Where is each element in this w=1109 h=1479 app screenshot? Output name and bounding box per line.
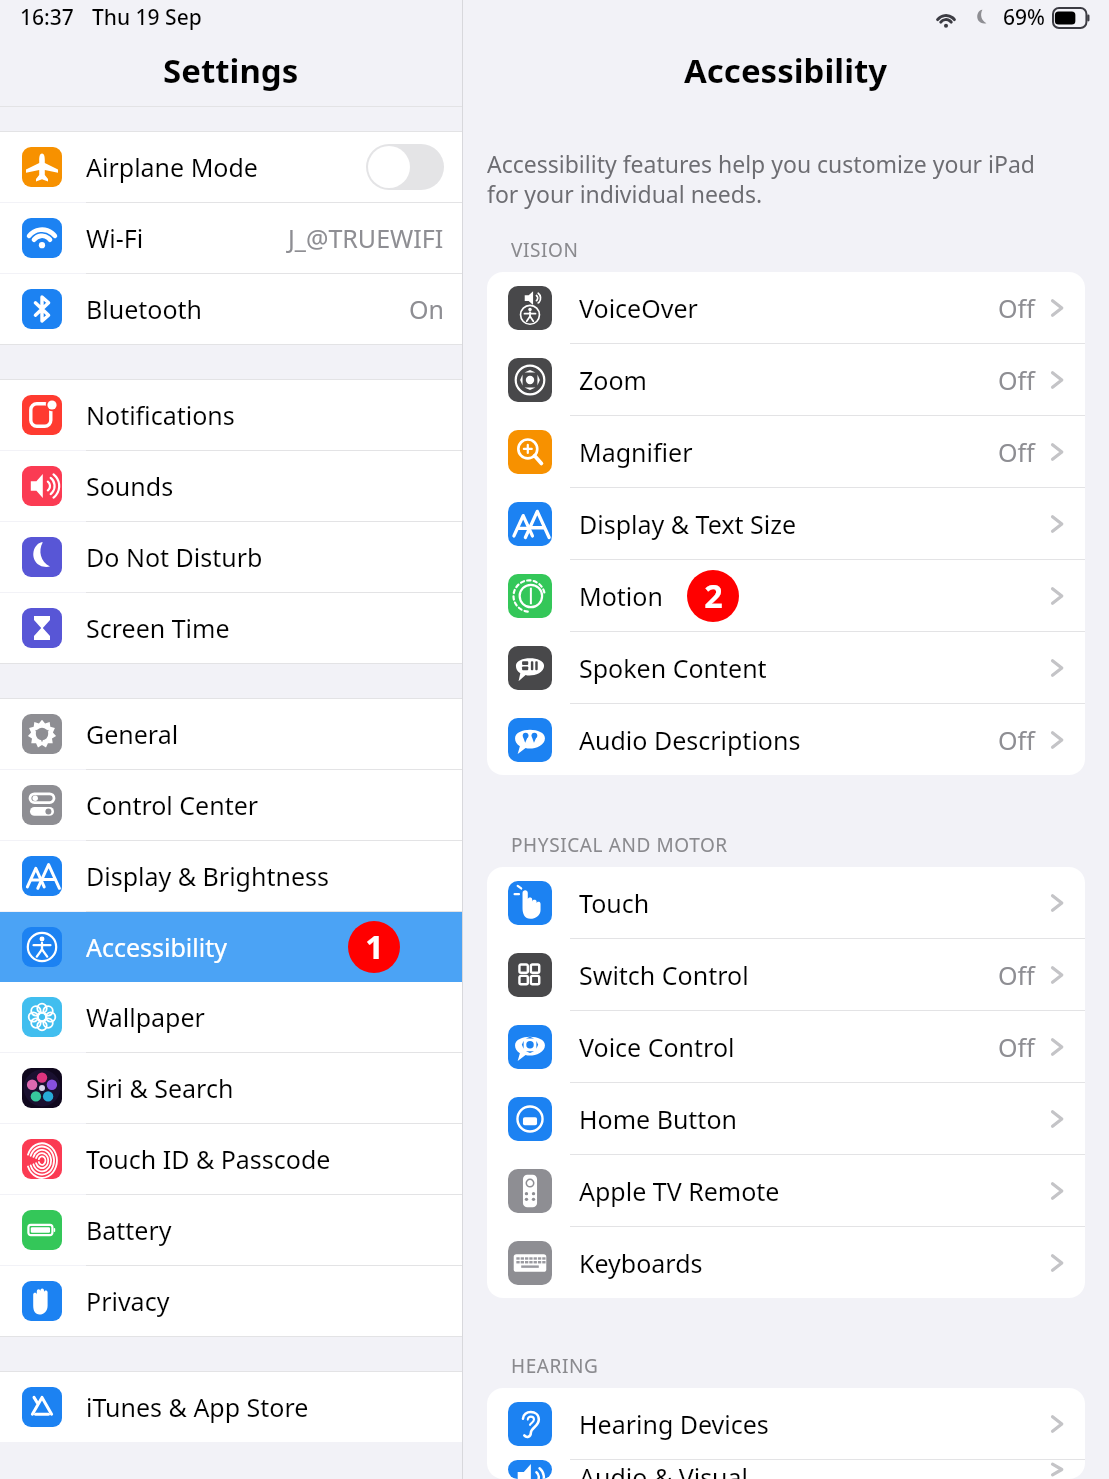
button[interactable]: Accessibility [0, 912, 462, 982]
staticText: Accessibility [86, 930, 227, 964]
staticText: Settings [163, 48, 299, 93]
staticText: Off [998, 291, 1035, 325]
staticText: Motion [579, 579, 663, 613]
staticText: 16:37 [20, 3, 74, 32]
button[interactable]: Home Button [487, 1083, 1085, 1154]
staticText: Bluetooth [86, 292, 203, 326]
staticText: Touch ID & Passcode [86, 1142, 331, 1176]
staticText: Sounds [86, 469, 174, 503]
staticText: Display & Text Size [579, 507, 797, 541]
staticText: Wi-Fi [86, 221, 144, 255]
button[interactable]: Switch Control [487, 939, 1085, 1010]
button[interactable]: Sounds [0, 451, 462, 521]
button[interactable]: General [0, 699, 462, 769]
button[interactable]: Touch [487, 867, 1085, 938]
button[interactable]: Motion [487, 560, 1085, 631]
button[interactable]: Display & Brightness [0, 841, 462, 911]
staticText: Audio Descriptions [579, 723, 801, 757]
staticText: Off [998, 958, 1035, 992]
staticText: Voice Control [579, 1030, 735, 1064]
button[interactable]: Wi-Fi [0, 203, 462, 273]
staticText: J_@TRUEWIFI [288, 221, 444, 255]
staticText: Home Button [579, 1102, 737, 1136]
button[interactable]: Do Not Disturb [0, 522, 462, 592]
button[interactable]: Apple TV Remote [487, 1155, 1085, 1226]
staticText: Off [998, 435, 1035, 469]
staticText: Spoken Content [579, 651, 767, 685]
staticText: Touch [579, 886, 650, 920]
button[interactable]: Display & Text Size [487, 488, 1085, 559]
button[interactable]: Touch ID & Passcode [0, 1124, 462, 1194]
staticText: Hearing Devices [579, 1407, 769, 1441]
staticText: Accessibility [684, 48, 888, 93]
staticText: Wallpaper [86, 1000, 205, 1034]
button[interactable]: Magnifier [487, 416, 1085, 487]
staticText: Siri & Search [86, 1071, 234, 1105]
staticText: General [86, 717, 179, 751]
staticText: Control Center [86, 788, 259, 822]
staticText: Off [998, 1030, 1035, 1064]
staticText: On [409, 292, 444, 326]
staticText: Battery [86, 1213, 172, 1247]
button[interactable]: Notifications [0, 380, 462, 450]
staticText: 1 [365, 925, 384, 969]
button[interactable]: Audio & Visual [487, 1460, 1085, 1479]
button[interactable]: VoiceOver [487, 272, 1085, 343]
button[interactable]: Control Center [0, 770, 462, 840]
button[interactable]: Battery [0, 1195, 462, 1265]
button[interactable]: Bluetooth [0, 274, 462, 344]
button[interactable]: Screen Time [0, 593, 462, 663]
button[interactable]: Siri & Search [0, 1053, 462, 1123]
staticText: Display & Brightness [86, 859, 329, 893]
button[interactable]: Hearing Devices [487, 1388, 1085, 1459]
staticText: PHYSICAL AND MOTOR [511, 832, 728, 858]
button[interactable]: Audio Descriptions [487, 704, 1085, 775]
staticText: HEARING [511, 1353, 599, 1379]
button[interactable]: Voice Control [487, 1011, 1085, 1082]
staticText: Screen Time [86, 611, 230, 645]
staticText: Privacy [86, 1284, 170, 1318]
staticText: Accessibility features help you customiz… [487, 148, 1039, 210]
button[interactable]: Airplane Mode [0, 132, 462, 202]
staticText: 69% [1003, 3, 1045, 32]
button[interactable]: Wallpaper [0, 982, 462, 1052]
staticText: Zoom [579, 363, 647, 397]
staticText: Audio & Visual [579, 1460, 749, 1479]
staticText: Keyboards [579, 1246, 703, 1280]
button[interactable]: Privacy [0, 1266, 462, 1336]
staticText: Notifications [86, 398, 235, 432]
staticText: 2 [704, 574, 723, 618]
button[interactable]: iTunes & App Store [0, 1372, 462, 1442]
staticText: VISION [511, 237, 579, 263]
button[interactable]: Airplane Mode toggle [366, 144, 444, 190]
button[interactable]: Keyboards [487, 1227, 1085, 1298]
staticText: Do Not Disturb [86, 540, 263, 574]
staticText: Magnifier [579, 435, 693, 469]
staticText: Airplane Mode [86, 150, 258, 184]
staticText: Switch Control [579, 958, 749, 992]
staticText: VoiceOver [579, 291, 698, 325]
staticText: Apple TV Remote [579, 1174, 780, 1208]
staticText: iTunes & App Store [86, 1390, 309, 1424]
staticText: Off [998, 723, 1035, 757]
staticText: Off [998, 363, 1035, 397]
staticText: Thu 19 Sep [92, 3, 202, 32]
button[interactable]: Zoom [487, 344, 1085, 415]
button[interactable]: Spoken Content [487, 632, 1085, 703]
